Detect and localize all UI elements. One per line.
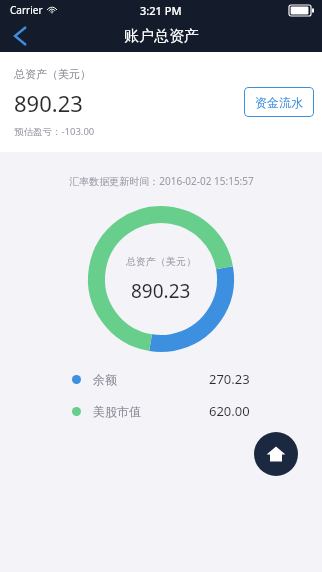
staticText: 总资产（美元） (14, 67, 91, 81)
staticText: 预估盈亏：-103.00 (14, 125, 95, 138)
button[interactable]: Back (0, 20, 40, 52)
button[interactable]: 资金流水 (244, 87, 314, 117)
staticText: 余额 (93, 372, 117, 387)
staticText: 总资产（美元） (126, 255, 196, 268)
staticText: 270.23 (209, 370, 250, 388)
staticText: 620.00 (209, 402, 250, 420)
staticText: 账户总资产 (124, 27, 199, 46)
button[interactable]: Home (254, 432, 298, 476)
staticText: 890.23 (131, 278, 191, 304)
staticText: Carrier (10, 3, 43, 17)
staticText: 资金流水 (255, 95, 303, 110)
staticText: 汇率数据更新时间：2016-02-02 15:15:57 (69, 174, 254, 188)
button[interactable]: 余额 (72, 370, 250, 388)
button[interactable]: 美股市值 (72, 402, 250, 420)
staticText: 美股市值 (93, 404, 141, 419)
staticText: 3:21 PM (140, 3, 182, 18)
staticText: 890.23 (14, 88, 83, 118)
